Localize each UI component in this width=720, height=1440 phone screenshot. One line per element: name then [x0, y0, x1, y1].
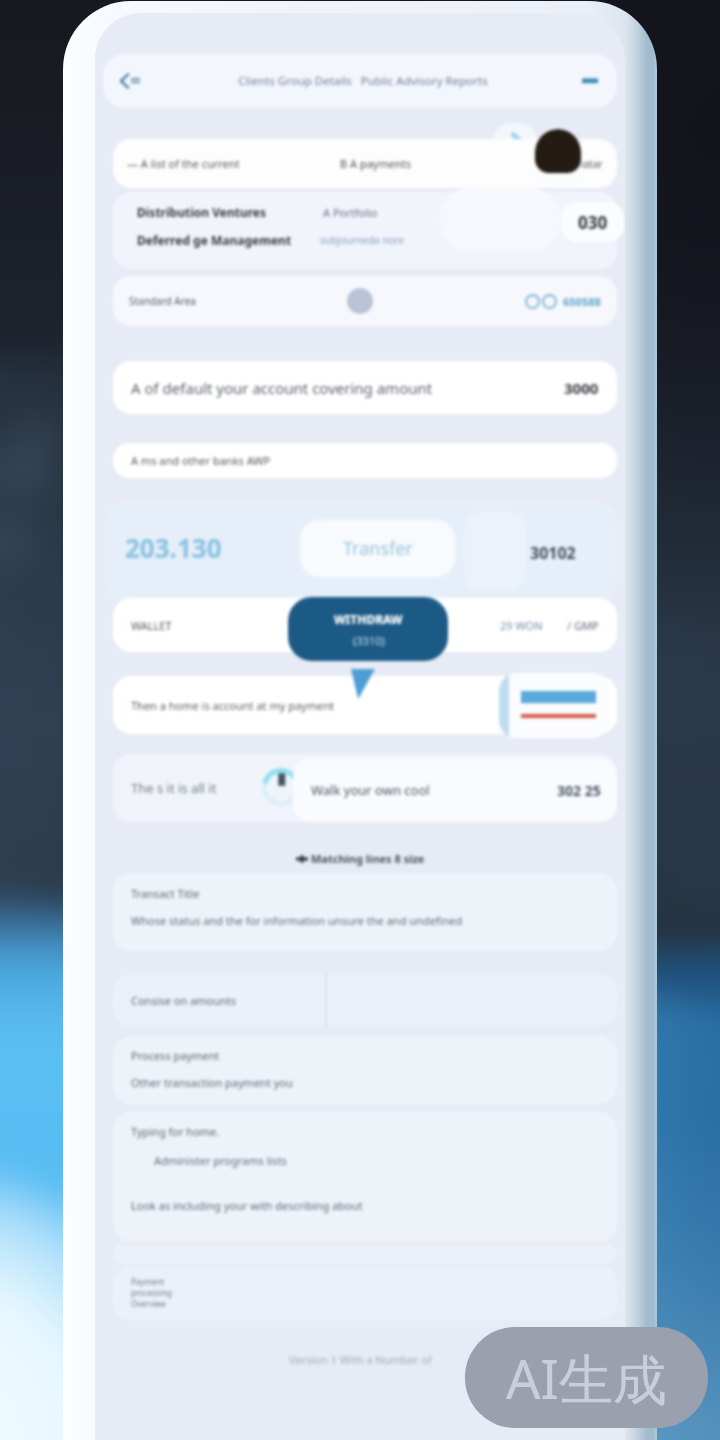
staticText: processing [131, 1287, 172, 1298]
button[interactable]: Menu [581, 72, 599, 90]
staticText: A Portfolio [323, 205, 378, 220]
staticText: Walk your own cool [311, 781, 430, 799]
staticText: Typing for home. [131, 1124, 220, 1139]
button[interactable]: The s it is all it [113, 754, 617, 822]
staticText: Overview [131, 1298, 166, 1309]
staticText: Distribution Ventures [137, 204, 267, 220]
button[interactable]: Transfer [300, 520, 455, 577]
button[interactable]: Standard Area [113, 276, 617, 326]
button[interactable]: — A list of the current [113, 139, 617, 188]
staticText: Version 1 With a Number of [289, 1352, 432, 1367]
staticText: Then a home is account at my payment [131, 698, 334, 713]
button[interactable]: Distribution Ventures [113, 192, 617, 269]
button[interactable]: WITHDRAW [288, 597, 448, 661]
staticText: (3310) [353, 633, 385, 648]
button[interactable]: Back [103, 54, 617, 108]
staticText: Transfer [343, 536, 413, 561]
staticText: The s it is all it [131, 779, 217, 797]
staticText: A of default your account covering amoun… [131, 378, 433, 398]
staticText: 302 25 [557, 781, 601, 800]
staticText: — A list of the current [127, 156, 240, 171]
staticText: Administer programs lists [131, 1153, 287, 1168]
staticText: B A payments [340, 156, 411, 171]
button[interactable]: A of default your account covering amoun… [113, 361, 617, 414]
button[interactable]: A ms and other banks AWP [113, 443, 617, 478]
staticText: 29 WON [500, 618, 543, 633]
button[interactable]: Payment [113, 1266, 617, 1320]
button[interactable]: Walk your own cool [293, 758, 617, 822]
staticText: Deferred ge Management [137, 232, 292, 248]
staticText: Payment [131, 1276, 165, 1287]
staticText: 650588 [563, 294, 601, 309]
staticText: Clients Group Details Public Advisory Re… [145, 73, 581, 89]
staticText: 203.130 [125, 530, 222, 565]
staticText: Matching lines 8 size [311, 851, 425, 866]
staticText: Avatar [572, 157, 603, 171]
button[interactable]: Transact Title [113, 873, 617, 951]
staticText: Other transaction payment you [131, 1075, 293, 1090]
staticText: subjourneda nore [320, 233, 405, 247]
staticText: Process payment [131, 1048, 220, 1063]
staticText: / GMP [567, 618, 599, 633]
button[interactable]: Consise on amounts [113, 974, 617, 1026]
button[interactable]: Back [117, 67, 145, 95]
staticText: Standard Area [129, 294, 196, 308]
button[interactable]: Process payment [113, 1036, 617, 1104]
staticText: Look as including your with describing a… [131, 1198, 363, 1213]
staticText: Transact Title [131, 886, 200, 901]
staticText: A ms and other banks AWP [131, 453, 271, 468]
button[interactable]: Then a home is account at my payment [113, 676, 617, 734]
button[interactable]: Typing for home. [113, 1112, 617, 1242]
staticText: 30102 [530, 542, 576, 564]
staticText: Whose status and the for information uns… [131, 913, 463, 928]
button[interactable]: WALLET [113, 598, 617, 652]
staticText: WITHDRAW [334, 611, 403, 627]
button[interactable]: 030 [561, 202, 624, 242]
staticText: WALLET [131, 618, 172, 633]
staticText: AI生成 [506, 1341, 667, 1415]
staticText: Consise on amounts [131, 993, 237, 1008]
staticText: 030 [578, 211, 608, 234]
staticText: 3000 [564, 378, 599, 398]
